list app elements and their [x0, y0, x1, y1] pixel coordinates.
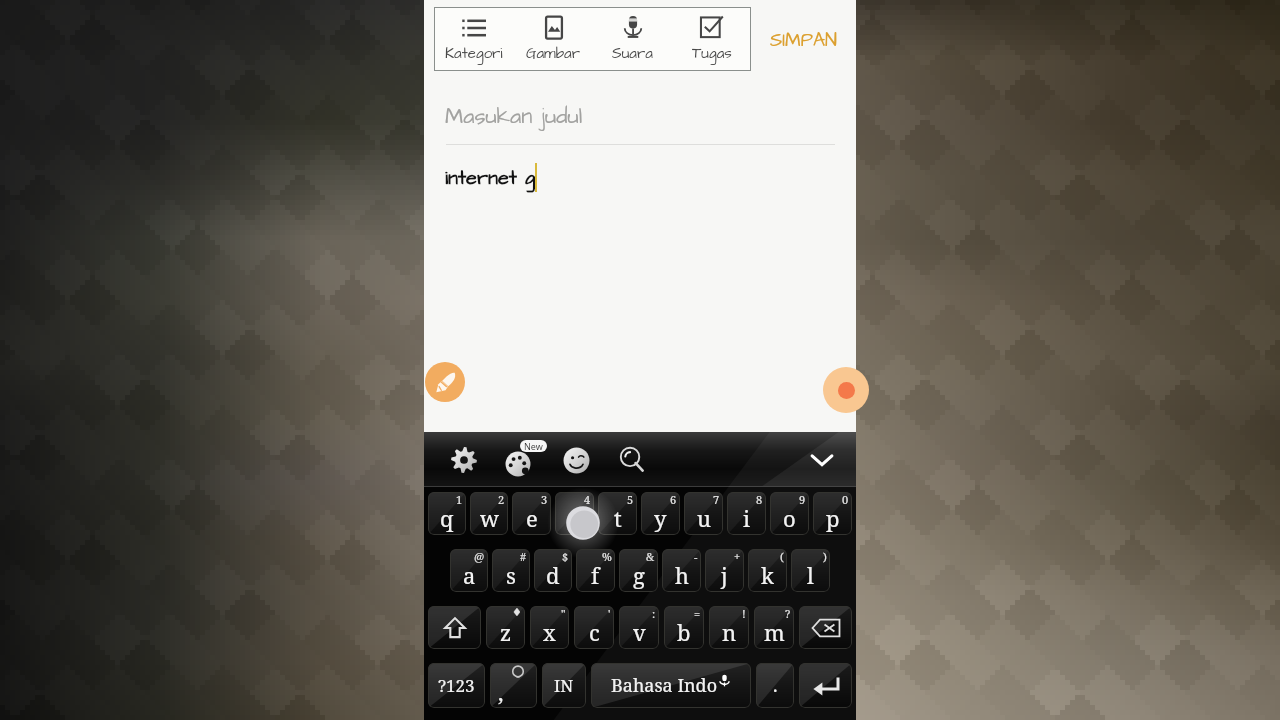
staticText: g	[633, 560, 645, 590]
button[interactable]: 7	[684, 492, 723, 535]
button[interactable]: .	[756, 663, 794, 708]
staticText: z	[500, 617, 512, 647]
button[interactable]: Theme	[496, 436, 544, 484]
staticText: $	[562, 549, 569, 564]
button[interactable]: :	[619, 606, 659, 649]
button[interactable]: @	[450, 549, 488, 592]
button[interactable]: "	[530, 606, 569, 649]
staticText: 5	[627, 492, 634, 507]
staticText: o	[783, 503, 796, 533]
button[interactable]: Enter	[799, 663, 852, 708]
staticText: 4	[584, 492, 591, 507]
button[interactable]: Tugas	[672, 7, 751, 71]
button[interactable]: 1	[428, 492, 466, 535]
staticText: ,	[498, 677, 504, 707]
button[interactable]: &	[619, 549, 658, 592]
staticText: k	[761, 560, 774, 590]
button[interactable]: ?	[754, 606, 794, 649]
button[interactable]: %	[576, 549, 615, 592]
button[interactable]: Hide keyboard	[802, 440, 842, 480]
staticText: x	[543, 617, 556, 647]
button[interactable]: 8	[727, 492, 766, 535]
staticText: SIMPAN	[770, 27, 838, 53]
button[interactable]: -	[662, 549, 701, 592]
staticText: i	[743, 503, 751, 533]
staticText: 9	[799, 492, 806, 507]
button[interactable]: 4	[555, 492, 594, 535]
button[interactable]: !	[709, 606, 749, 649]
button[interactable]: '	[574, 606, 614, 649]
staticText: internet g	[445, 164, 536, 192]
staticText: t	[614, 503, 622, 533]
button[interactable]: Kategori	[434, 7, 514, 71]
staticText: :	[652, 606, 656, 621]
button[interactable]: #	[492, 549, 530, 592]
staticText: Bahasa Indo	[611, 673, 718, 698]
button[interactable]: =	[664, 606, 704, 649]
button[interactable]: SIMPAN	[766, 25, 842, 55]
staticText: !	[742, 606, 746, 621]
staticText: %	[602, 549, 612, 564]
button[interactable]: $	[534, 549, 572, 592]
staticText: New	[524, 440, 543, 452]
staticText: )	[823, 549, 827, 564]
staticText: Suara	[612, 43, 653, 64]
staticText: #	[520, 549, 527, 564]
button[interactable]: 6	[641, 492, 680, 535]
staticText: 2	[498, 492, 505, 507]
button[interactable]: ♦	[486, 606, 525, 649]
staticText: u	[697, 503, 711, 533]
button[interactable]: Colour picker	[823, 367, 869, 413]
button[interactable]: 2	[470, 492, 508, 535]
button[interactable]: Gambar	[514, 7, 593, 71]
staticText: w	[480, 503, 499, 533]
button[interactable]: 9	[770, 492, 809, 535]
staticText: &	[646, 549, 655, 564]
button[interactable]: Emoji	[552, 436, 600, 484]
staticText: h	[675, 560, 689, 590]
button[interactable]: Comma	[490, 663, 537, 708]
staticText: ♦	[512, 606, 522, 619]
staticText: r	[569, 503, 580, 533]
button[interactable]: Bahasa Indo	[591, 663, 751, 708]
staticText: f	[591, 560, 600, 590]
staticText: n	[722, 617, 737, 647]
staticText: m	[764, 617, 785, 647]
staticText: Tugas	[692, 43, 732, 64]
staticText: y	[654, 503, 667, 533]
staticText: l	[807, 560, 814, 590]
button[interactable]: IN	[542, 663, 586, 708]
staticText: =	[694, 606, 701, 621]
staticText: b	[677, 617, 691, 647]
button[interactable]: Suara	[593, 7, 672, 71]
button[interactable]: +	[705, 549, 744, 592]
staticText: -	[694, 549, 698, 564]
button[interactable]: 0	[813, 492, 852, 535]
staticText: 7	[713, 492, 720, 507]
button[interactable]: 3	[512, 492, 551, 535]
button[interactable]: ?123	[428, 663, 485, 708]
button[interactable]: Settings	[440, 436, 488, 484]
button[interactable]: Brush	[425, 362, 465, 402]
staticText: 6	[670, 492, 677, 507]
staticText: p	[826, 503, 840, 533]
staticText: +	[734, 549, 741, 564]
staticText: '	[608, 606, 611, 621]
button[interactable]: 5	[598, 492, 637, 535]
button[interactable]: Backspace	[799, 606, 852, 649]
staticText: s	[506, 560, 516, 590]
staticText: .	[773, 673, 778, 698]
staticText: Masukan judul	[445, 101, 583, 132]
staticText: j	[721, 560, 728, 590]
staticText: ?	[785, 606, 791, 621]
staticText: Gambar	[526, 43, 581, 64]
staticText: 0	[842, 492, 849, 507]
staticText: 8	[756, 492, 763, 507]
button[interactable]: Shift	[428, 606, 481, 649]
staticText: IN	[554, 674, 574, 697]
staticText: c	[589, 617, 600, 647]
button[interactable]: )	[791, 549, 830, 592]
button[interactable]: Search	[608, 436, 656, 484]
staticText: (	[780, 549, 784, 564]
button[interactable]: (	[748, 549, 787, 592]
